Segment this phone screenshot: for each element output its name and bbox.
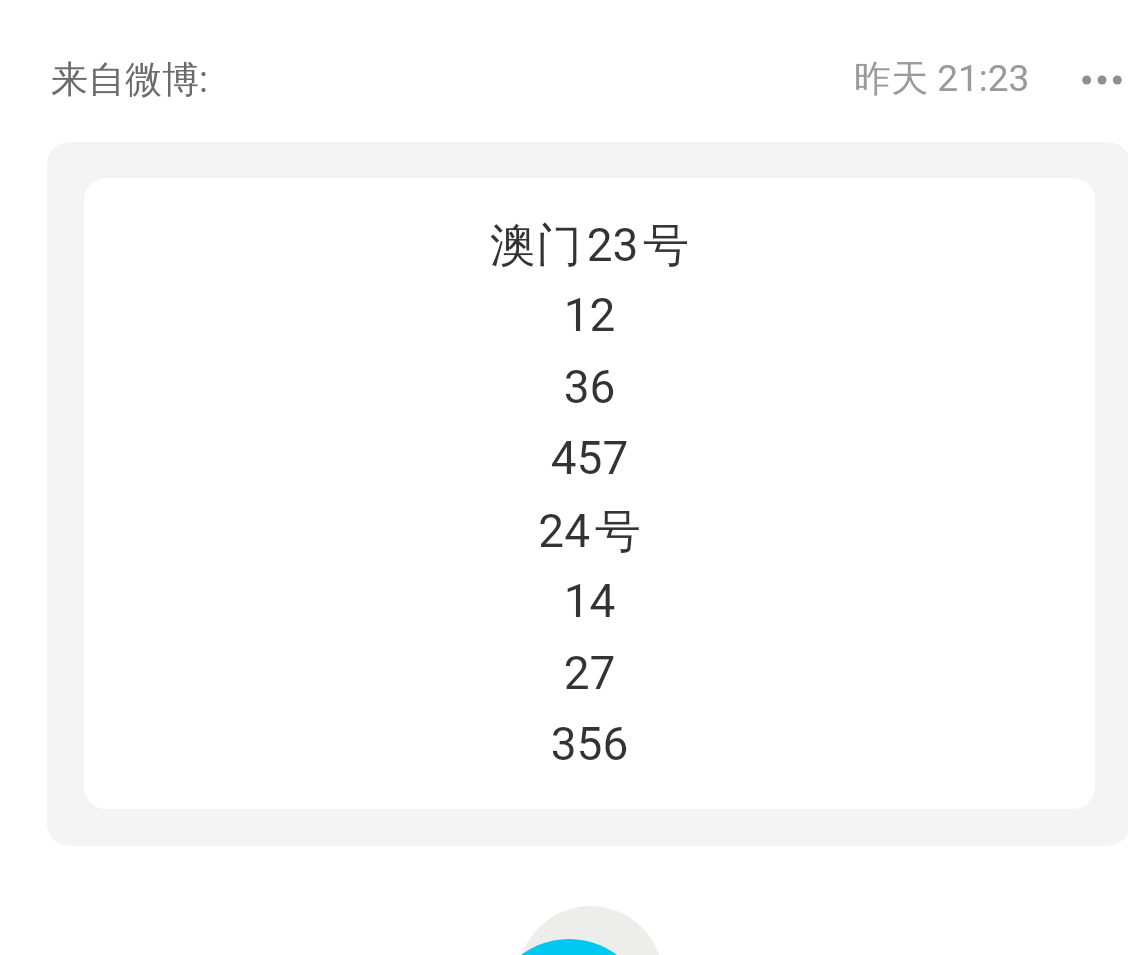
staticText: 来自微博:	[51, 56, 208, 103]
button[interactable]: 来自微博:	[51, 56, 208, 103]
staticText: 457	[84, 431, 1095, 485]
staticText: 昨天 21:23	[854, 55, 1030, 102]
staticText: 36	[84, 360, 1095, 414]
button[interactable]: 澳门 23 号	[47, 142, 1128, 846]
staticText: 12	[84, 288, 1095, 342]
button[interactable]: Account avatar	[518, 906, 663, 955]
button[interactable]: Compose	[489, 939, 649, 955]
button[interactable]: 昨天 21:23	[854, 55, 1030, 102]
button[interactable]: More options	[1058, 36, 1128, 124]
staticText: 14	[84, 574, 1095, 628]
staticText: 24 号	[84, 503, 1095, 561]
staticText: 澳门 23 号	[84, 217, 1095, 275]
staticText: 356	[84, 717, 1095, 771]
staticText: 27	[84, 646, 1095, 700]
